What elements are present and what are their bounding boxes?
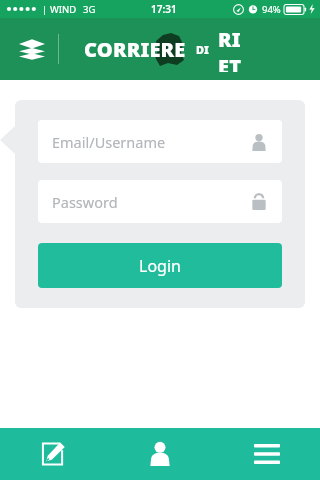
staticText: | [42, 3, 47, 15]
staticText: Password [52, 192, 118, 212]
staticText: Email/Username [52, 132, 166, 152]
staticText: CORRIERE [84, 36, 186, 63]
staticText: Login [139, 255, 181, 277]
button[interactable]: Login [38, 243, 282, 288]
button[interactable]: More [213, 428, 320, 480]
staticText: DI [196, 42, 209, 57]
button[interactable]: Profile [106, 428, 213, 480]
button[interactable]: Menu [12, 29, 52, 69]
staticText: 17:31 [151, 2, 177, 16]
button[interactable]: Compose [0, 428, 106, 480]
button[interactable]: Password [38, 180, 282, 223]
staticText: RIETI [218, 26, 248, 72]
staticText: 94% [262, 3, 281, 16]
staticText: 3G [83, 3, 96, 16]
button[interactable]: Email/Username [38, 120, 282, 163]
staticText: WIND [50, 3, 77, 16]
